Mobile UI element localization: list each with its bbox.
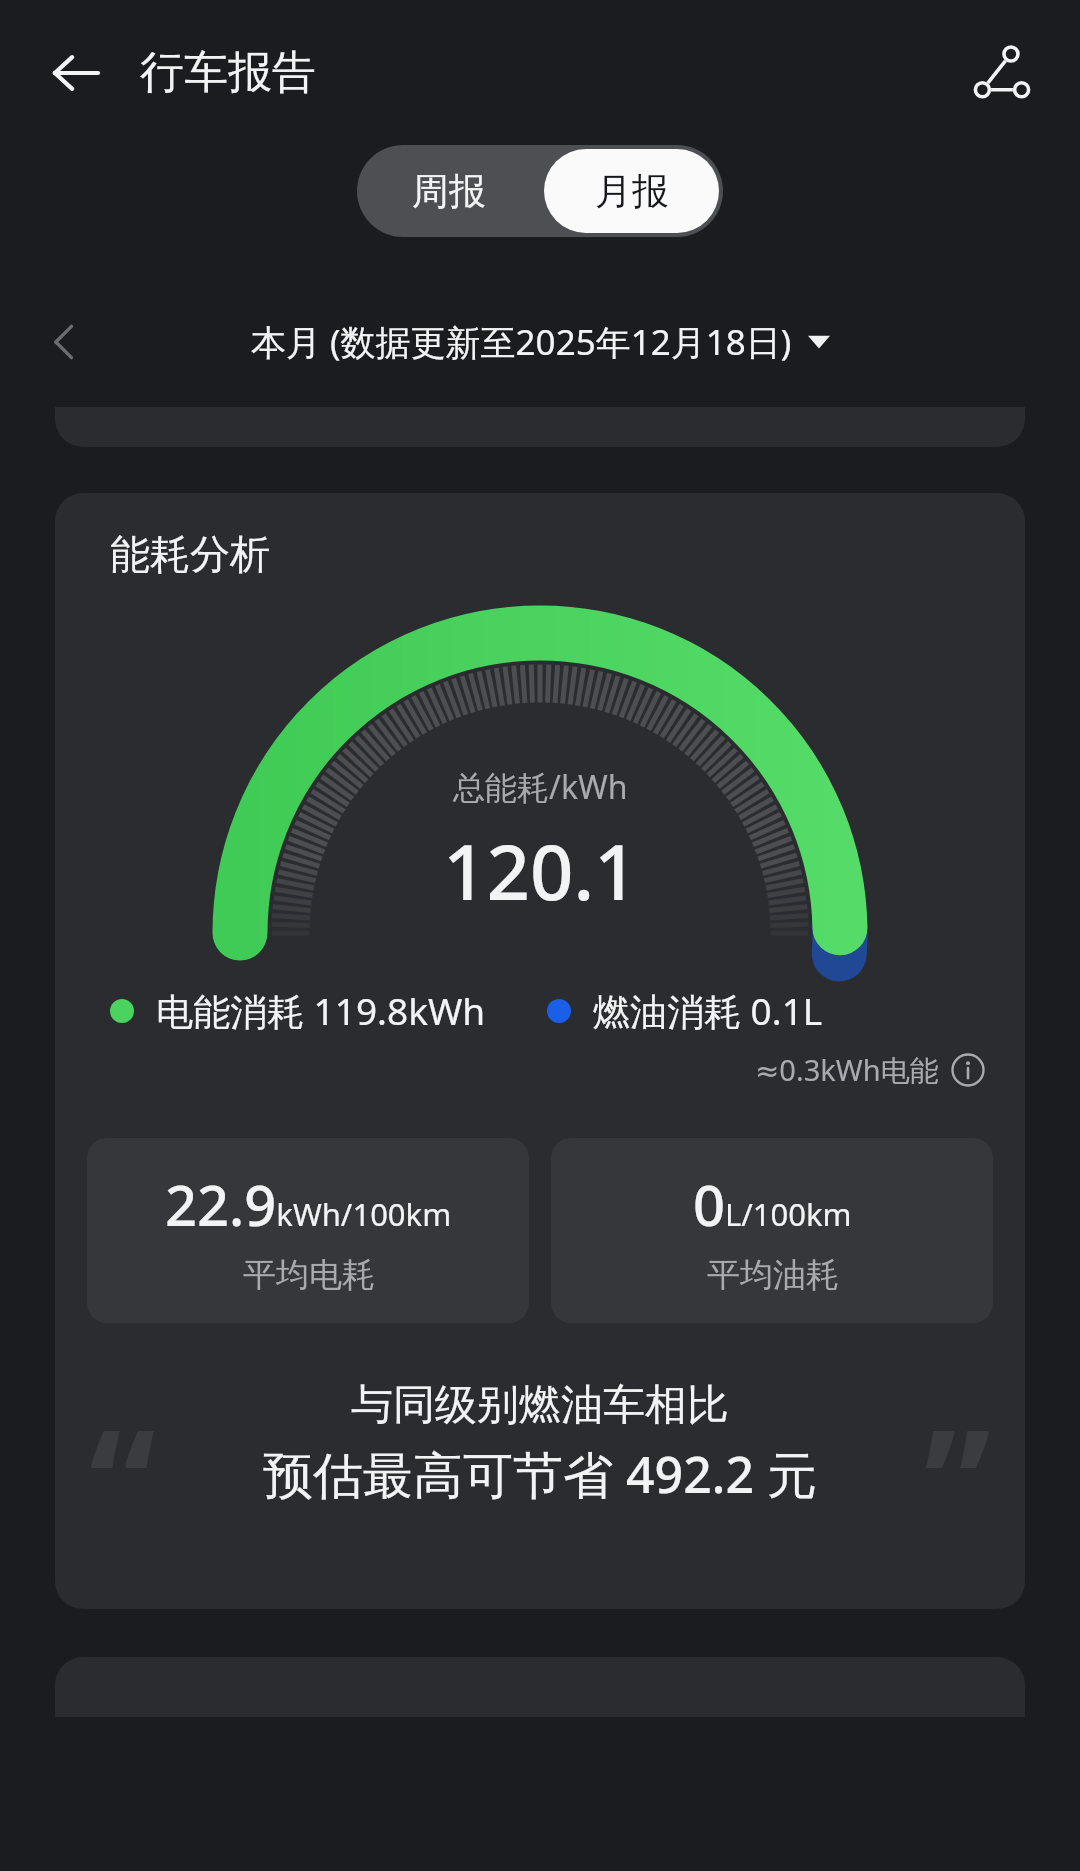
button[interactable]: 0L/100km xyxy=(551,1138,993,1323)
staticText: 与同级别燃油车相比 xyxy=(351,1379,729,1432)
staticText: 0L/100km xyxy=(693,1166,852,1242)
staticText: 总能耗/kWh xyxy=(453,765,628,809)
staticText: 月报 xyxy=(595,168,669,215)
staticText: 电能消耗 119.8kWh xyxy=(156,985,486,1036)
staticText: 预估最高可节省 492.2 元 xyxy=(263,1440,817,1508)
button[interactable]: 本月 (数据更新至2025年12月18日) xyxy=(251,318,830,366)
staticText: ” xyxy=(924,1379,991,1569)
staticText: 120.1 xyxy=(443,819,638,923)
button[interactable]: Back xyxy=(38,35,114,111)
button[interactable]: ≈0.3kWh电能 xyxy=(755,1050,985,1090)
staticText: 周报 xyxy=(412,168,486,215)
staticText: “ xyxy=(89,1379,156,1569)
staticText: 能耗分析 xyxy=(110,529,270,579)
staticText: ≈0.3kWh电能 xyxy=(755,1050,939,1090)
staticText: 燃油消耗 0.1L xyxy=(593,985,823,1036)
staticText: 22.9kWh/100km xyxy=(165,1166,452,1242)
staticText: 行车报告 xyxy=(140,45,316,100)
button[interactable]: 周报 xyxy=(357,145,540,237)
staticText: 平均电耗 xyxy=(243,1254,375,1296)
button[interactable]: Previous period xyxy=(28,306,100,378)
button[interactable]: 22.9kWh/100km xyxy=(87,1138,529,1323)
button[interactable]: 月报 xyxy=(544,149,719,233)
staticText: 平均油耗 xyxy=(707,1254,839,1296)
staticText: 本月 (数据更新至2025年12月18日) xyxy=(251,318,792,366)
button[interactable]: Share xyxy=(962,33,1042,113)
